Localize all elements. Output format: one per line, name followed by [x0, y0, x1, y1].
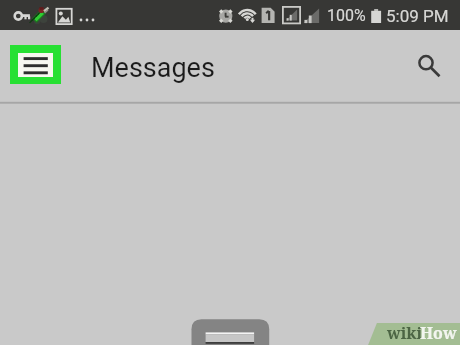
staticText: Messages [91, 52, 215, 84]
staticText: How [420, 322, 457, 344]
staticText: 5:09 PM [386, 6, 449, 26]
staticText: wiki [387, 322, 423, 344]
button[interactable]: Open navigation menu [10, 45, 61, 84]
staticText: 100% [327, 6, 366, 25]
button[interactable]: Search [408, 46, 448, 86]
